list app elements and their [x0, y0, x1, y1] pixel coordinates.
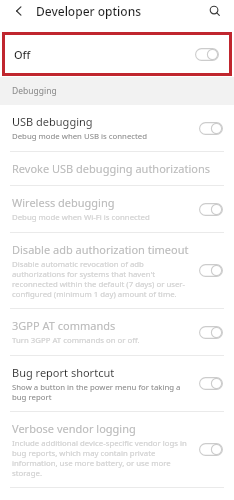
button[interactable]: Toggle — [194, 47, 220, 62]
staticText: Debug mode when Wi-Fi is connected — [12, 212, 150, 223]
staticText: Show a button in the power menu for taki… — [12, 382, 192, 402]
button[interactable]: 3GPP AT commands — [0, 309, 234, 355]
button[interactable]: Back — [8, 0, 30, 22]
button[interactable]: Disable adb authorization timeout — [0, 233, 234, 308]
button[interactable]: Toggle — [198, 121, 224, 136]
staticText: Debug mode when USB is connected — [12, 131, 148, 142]
staticText: Include additional device-specific vendo… — [12, 438, 192, 478]
button[interactable]: Revoke USB debugging authorizations — [0, 152, 234, 185]
staticText: Disable adb authorization timeout — [12, 242, 189, 257]
staticText: Turn 3GPP AT commands on or off. — [12, 335, 140, 346]
staticText: USB debugging — [12, 114, 93, 129]
button[interactable]: Bug report shortcut — [0, 356, 234, 411]
staticText: Bug report shortcut — [12, 365, 115, 380]
staticText: 3GPP AT commands — [12, 318, 116, 333]
button[interactable]: Wireless debugging — [0, 186, 234, 232]
button[interactable]: Verbose vendor logging — [0, 412, 234, 487]
button[interactable]: Toggle — [198, 202, 224, 217]
button[interactable]: Search — [204, 0, 226, 22]
button[interactable]: Toggle — [198, 442, 224, 457]
staticText: Off — [14, 47, 31, 62]
staticText: Wireless debugging — [12, 195, 115, 210]
staticText: Revoke USB debugging authorizations — [12, 161, 211, 176]
button[interactable]: Toggle — [198, 325, 224, 340]
button[interactable]: Off — [2, 32, 232, 76]
button[interactable]: USB debugging — [0, 105, 234, 151]
button[interactable]: Toggle — [198, 376, 224, 391]
staticText: Disable automatic revocation of adb auth… — [12, 259, 192, 299]
staticText: Debugging — [12, 85, 57, 97]
staticText: Verbose vendor logging — [12, 421, 136, 436]
staticText: Developer options — [36, 3, 142, 19]
button[interactable]: Toggle — [198, 263, 224, 278]
